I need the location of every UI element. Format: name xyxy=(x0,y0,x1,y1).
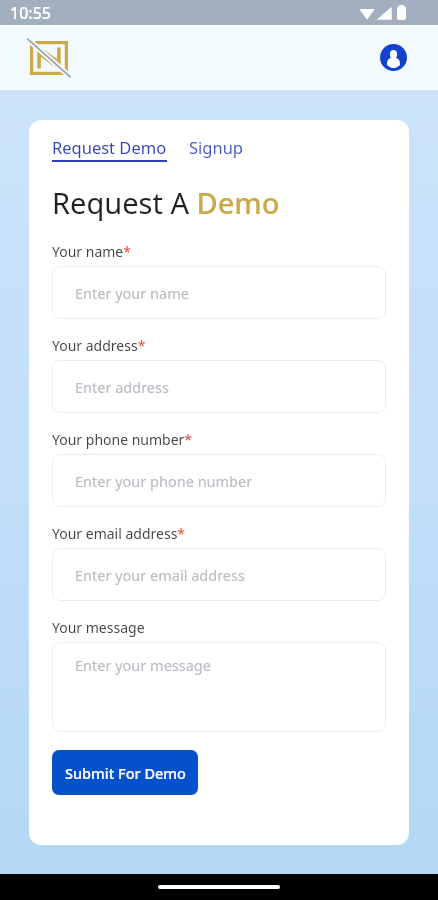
button[interactable]: Signup xyxy=(189,136,244,158)
staticText: Request Demo xyxy=(52,136,167,158)
staticText: Your email address* xyxy=(52,524,186,543)
button[interactable]: Logo xyxy=(30,41,68,75)
button[interactable]: Enter address xyxy=(52,360,386,413)
staticText: Enter your name xyxy=(75,283,189,303)
staticText: Signup xyxy=(189,136,244,158)
button[interactable]: Request Demo xyxy=(52,136,167,162)
staticText: Request A Demo xyxy=(52,183,280,222)
staticText: 10:55 xyxy=(10,2,51,24)
button[interactable]: Enter your email address xyxy=(52,548,386,601)
staticText: Enter your email address xyxy=(75,565,245,585)
staticText: Your phone number* xyxy=(52,430,193,449)
staticText: Enter your phone number xyxy=(75,471,253,491)
staticText: Enter address xyxy=(75,377,169,397)
staticText: Your message xyxy=(52,618,145,637)
staticText: Your name* xyxy=(52,242,131,261)
staticText: Your address* xyxy=(52,336,146,355)
staticText: Enter your message xyxy=(75,655,211,675)
staticText: Submit For Demo xyxy=(65,763,186,783)
button[interactable]: Enter your message xyxy=(52,642,386,732)
button[interactable]: Submit For Demo xyxy=(52,750,198,795)
button[interactable]: Enter your phone number xyxy=(52,454,386,507)
button[interactable]: Account xyxy=(380,44,407,71)
button[interactable]: Enter your name xyxy=(52,266,386,319)
